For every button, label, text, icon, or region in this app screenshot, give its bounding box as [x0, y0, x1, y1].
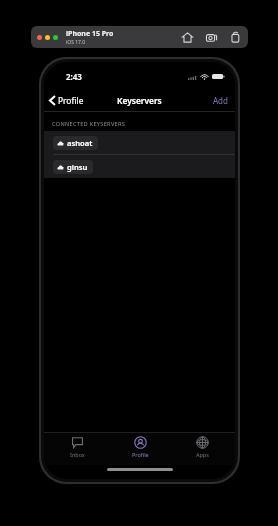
button[interactable]: ginsu: [44, 155, 235, 178]
button[interactable]: Screenshot: [204, 30, 218, 44]
staticText: Profile: [132, 451, 149, 458]
button[interactable]: Apps: [172, 433, 232, 465]
staticText: CONNECTED KEYSERVERS: [52, 120, 126, 128]
staticText: Keyservers: [117, 95, 162, 106]
staticText: 2:43: [66, 71, 82, 82]
button[interactable]: Inbox: [47, 433, 107, 465]
staticText: Profile: [58, 95, 84, 106]
staticText: Inbox: [70, 451, 85, 458]
button[interactable]: Profile: [44, 93, 90, 108]
button[interactable]: ashoat: [44, 131, 235, 154]
button[interactable]: Profile: [110, 433, 170, 465]
staticText: iPhone 15 Pro: [66, 29, 114, 39]
staticText: iOS 17.0: [66, 39, 86, 46]
staticText: ginsu: [67, 162, 88, 172]
staticText: ashoat: [67, 138, 93, 148]
button[interactable]: Add: [206, 93, 235, 108]
staticText: Apps: [196, 451, 209, 458]
button[interactable]: Rotate: [228, 30, 242, 44]
staticText: Add: [213, 95, 228, 106]
button[interactable]: Home: [180, 30, 194, 44]
